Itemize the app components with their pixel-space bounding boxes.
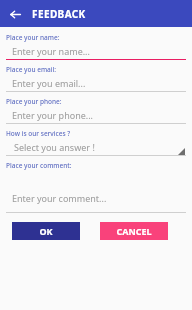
button[interactable]: Enter your phone... <box>6 107 186 124</box>
staticText: Enter your phone... <box>12 109 94 121</box>
button[interactable]: Enter you email... <box>6 75 186 92</box>
staticText: Enter your comment... <box>12 192 107 204</box>
staticText: Enter you email... <box>12 77 86 89</box>
button[interactable]: Select you answer ! <box>6 139 186 156</box>
button[interactable]: Enter your comment... <box>6 170 186 213</box>
button[interactable]: Back <box>6 5 24 23</box>
button[interactable]: CANCEL <box>100 222 168 240</box>
staticText: Enter your name... <box>12 45 90 57</box>
staticText: Place your phone: <box>6 97 62 106</box>
staticText: How is our services ? <box>6 129 71 138</box>
button[interactable]: Enter your name... <box>6 43 186 60</box>
staticText: Select you answer ! <box>14 141 95 153</box>
staticText: Place your name: <box>6 33 60 42</box>
staticText: OK <box>39 225 53 237</box>
staticText: CANCEL <box>116 225 152 237</box>
staticText: FEEDBACK <box>32 7 86 21</box>
staticText: Place your comment: <box>6 161 72 170</box>
staticText: Place you email: <box>6 65 57 74</box>
button[interactable]: OK <box>12 222 80 240</box>
